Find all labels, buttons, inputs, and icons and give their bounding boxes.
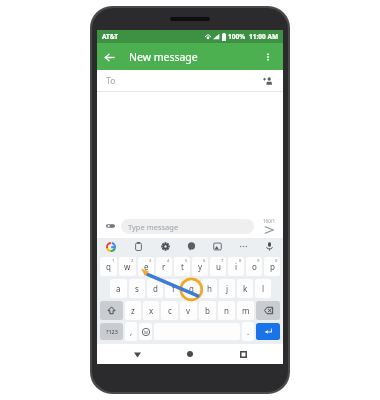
button[interactable]: a	[110, 279, 127, 298]
button[interactable]: Enter	[256, 323, 280, 340]
button[interactable]: Emoji	[139, 323, 152, 340]
button[interactable]: c	[161, 301, 178, 320]
staticText: p	[270, 261, 275, 272]
button[interactable]: m	[237, 301, 254, 320]
staticText: 6	[203, 258, 206, 264]
staticText: c	[168, 305, 172, 316]
button[interactable]: Shift	[100, 301, 123, 320]
button[interactable]: 7	[210, 257, 226, 276]
button[interactable]: GIF	[211, 240, 224, 253]
button[interactable]: x	[143, 301, 159, 320]
button[interactable]: j	[219, 279, 235, 298]
button[interactable]: ,	[125, 322, 137, 341]
staticText: g	[189, 283, 194, 294]
button[interactable]: 2	[119, 257, 136, 276]
button[interactable]: 3	[138, 257, 154, 276]
staticText: ,	[130, 326, 133, 337]
button[interactable]: Voice input	[263, 240, 276, 253]
staticText: ?123	[106, 328, 118, 335]
button[interactable]: l	[255, 279, 271, 298]
button[interactable]: n	[218, 301, 235, 320]
staticText: y	[198, 261, 203, 272]
button[interactable]: Type message	[121, 219, 254, 234]
staticText: s	[135, 283, 139, 294]
staticText: 8	[239, 258, 242, 264]
staticText: v	[186, 305, 191, 316]
staticText: o	[252, 261, 257, 272]
button[interactable]: .	[242, 322, 254, 341]
staticText: i	[235, 261, 238, 272]
button[interactable]: Settings	[159, 240, 172, 253]
staticText: 5	[185, 258, 188, 264]
staticText: n	[224, 305, 229, 316]
button[interactable]: b	[199, 301, 216, 320]
staticText: u	[216, 261, 221, 272]
button[interactable]: ?123	[100, 323, 123, 340]
staticText: q	[106, 261, 111, 272]
button[interactable]: 0	[264, 257, 280, 276]
staticText: 160/1	[263, 218, 275, 224]
staticText: z	[131, 305, 135, 316]
staticText: w	[124, 261, 131, 272]
staticText: e	[144, 261, 149, 272]
staticText: m	[242, 305, 250, 316]
staticText: 2	[131, 258, 134, 264]
staticText: t	[181, 261, 184, 272]
staticText: h	[207, 283, 212, 294]
staticText: New message	[129, 50, 198, 64]
staticText: 100%	[228, 32, 246, 41]
button[interactable]: s	[129, 279, 145, 298]
button[interactable]: Google	[104, 240, 118, 254]
button[interactable]: v	[180, 301, 197, 320]
button[interactable]: Add contact	[259, 72, 277, 90]
button[interactable]: 4	[156, 257, 172, 276]
button[interactable]: Back	[124, 344, 150, 364]
staticText: .	[247, 326, 250, 337]
button[interactable]: f	[165, 279, 181, 298]
button[interactable]: More	[237, 240, 250, 253]
button[interactable]: d	[147, 279, 163, 298]
staticText: d	[153, 283, 158, 294]
button[interactable]: 5	[174, 257, 190, 276]
staticText: k	[243, 283, 248, 294]
button[interactable]: To	[97, 70, 283, 91]
button[interactable]: Recents	[230, 344, 256, 364]
staticText: x	[149, 305, 154, 316]
staticText: To	[106, 75, 116, 87]
staticText: 0	[275, 258, 278, 264]
staticText: 1	[112, 258, 115, 264]
button[interactable]: SIM selector	[102, 218, 118, 234]
button[interactable]: 8	[228, 257, 244, 276]
button[interactable]: Clipboard	[132, 240, 145, 253]
button[interactable]: More options	[256, 45, 280, 69]
button[interactable]: 1	[100, 257, 117, 276]
staticText: j	[226, 283, 229, 294]
button[interactable]: 9	[246, 257, 262, 276]
staticText: l	[262, 283, 265, 294]
staticText: 4	[167, 258, 170, 264]
button[interactable]: Back	[97, 45, 121, 69]
staticText: f	[172, 283, 175, 294]
staticText: a	[116, 283, 121, 294]
button[interactable]: Backspace	[256, 301, 280, 320]
button[interactable]: Home	[177, 344, 203, 364]
staticText: 7	[221, 258, 224, 264]
staticText: 3	[149, 258, 152, 264]
staticText: Type message	[128, 222, 179, 232]
staticText: 9	[257, 258, 260, 264]
staticText: r	[162, 261, 166, 272]
button[interactable]: k	[237, 279, 253, 298]
staticText: 11:00 AM	[249, 32, 279, 41]
button[interactable]: Stickers	[185, 240, 198, 253]
button[interactable]: 6	[192, 257, 208, 276]
button[interactable]: z	[125, 301, 141, 320]
button[interactable]: Send	[258, 214, 280, 238]
button[interactable]: h	[201, 279, 217, 298]
button[interactable]: g	[183, 279, 199, 298]
staticText: AT&T	[102, 32, 118, 41]
staticText: b	[205, 305, 210, 316]
